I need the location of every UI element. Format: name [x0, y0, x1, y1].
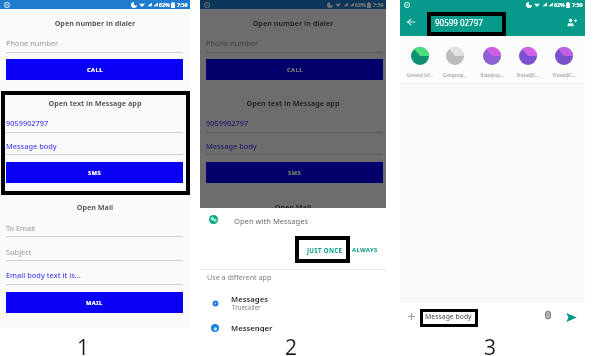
button[interactable]: Messenger	[200, 323, 386, 332]
staticText: Balanjiup...	[475, 72, 509, 78]
staticText: CALL	[287, 66, 303, 74]
staticText: 7:50	[373, 1, 384, 8]
staticText: General Inf...	[403, 72, 437, 78]
button[interactable]: PrasadjiC...	[511, 47, 545, 78]
staticText: ALWAYS	[352, 246, 378, 254]
staticText: Open Mail	[200, 202, 386, 212]
staticText: Open text in Message app	[200, 98, 386, 108]
button[interactable]: Attach file	[544, 311, 552, 319]
staticText: JUST ONCE	[307, 246, 343, 254]
staticText: Open number in dialer	[0, 18, 190, 28]
staticText: 62%	[159, 1, 170, 8]
button[interactable]: JUST ONCE	[303, 243, 347, 257]
staticText: Messages	[231, 294, 269, 304]
button[interactable]: PrasadjiC...	[547, 47, 581, 78]
button[interactable]: SMS	[6, 162, 183, 183]
staticText: Open number in dialer	[200, 18, 386, 28]
button[interactable]: Messages	[200, 294, 386, 318]
button[interactable]: ALWAYS	[348, 243, 382, 257]
staticText: 2	[285, 333, 298, 356]
button[interactable]: CALL	[6, 59, 183, 80]
staticText: Open Mail	[0, 202, 190, 212]
staticText: SMS	[288, 169, 302, 177]
button[interactable]: Back	[407, 18, 415, 26]
staticText: PrasadjiC...	[547, 72, 581, 78]
staticText: 62%	[355, 1, 366, 8]
button[interactable]: MAIL	[6, 292, 183, 313]
staticText: 9059902797	[206, 118, 249, 128]
staticText: MAIL	[86, 299, 103, 307]
staticText: CALL	[87, 66, 103, 74]
staticText: 62%	[554, 1, 565, 8]
button[interactable]: SMS	[206, 162, 383, 183]
staticText: 9059902797	[6, 118, 49, 128]
staticText: To Email	[6, 223, 35, 233]
staticText: Email body text it is...	[206, 270, 281, 280]
staticText: 7:50	[177, 1, 188, 8]
button[interactable]: Add contact	[567, 18, 577, 28]
staticText: Use a different app	[207, 272, 272, 282]
staticText: PrasadjiC...	[511, 72, 545, 78]
staticText: 90599 02797	[435, 17, 483, 28]
staticText: 7:50	[572, 1, 583, 8]
staticText: Open with Messages	[234, 216, 309, 226]
staticText: 1	[77, 333, 90, 356]
button[interactable]: Balanjiup...	[475, 47, 509, 78]
button[interactable]: CALL	[206, 59, 383, 80]
staticText: Truecaller	[232, 303, 261, 311]
staticText: 3	[484, 333, 497, 356]
staticText: Gangarap...	[438, 72, 472, 78]
button[interactable]: Send	[566, 312, 577, 323]
button[interactable]: MAIL	[206, 292, 383, 313]
staticText: Phone number	[6, 38, 58, 48]
staticText: Message body	[206, 141, 257, 151]
button[interactable]: Add attachment	[408, 313, 415, 320]
staticText: Phone number	[206, 38, 258, 48]
staticText: To Email	[206, 223, 235, 233]
staticText: SMS	[88, 169, 102, 177]
button[interactable]: General Inf...	[403, 47, 437, 78]
staticText: Subject	[6, 247, 32, 257]
staticText: Open text in Message app	[0, 98, 190, 108]
staticText: Message body	[425, 312, 472, 321]
staticText: Messenger	[231, 323, 273, 332]
staticText: Email body text it is...	[6, 270, 81, 280]
button[interactable]: Gangarap...	[438, 47, 472, 78]
staticText: Message body	[6, 141, 57, 151]
